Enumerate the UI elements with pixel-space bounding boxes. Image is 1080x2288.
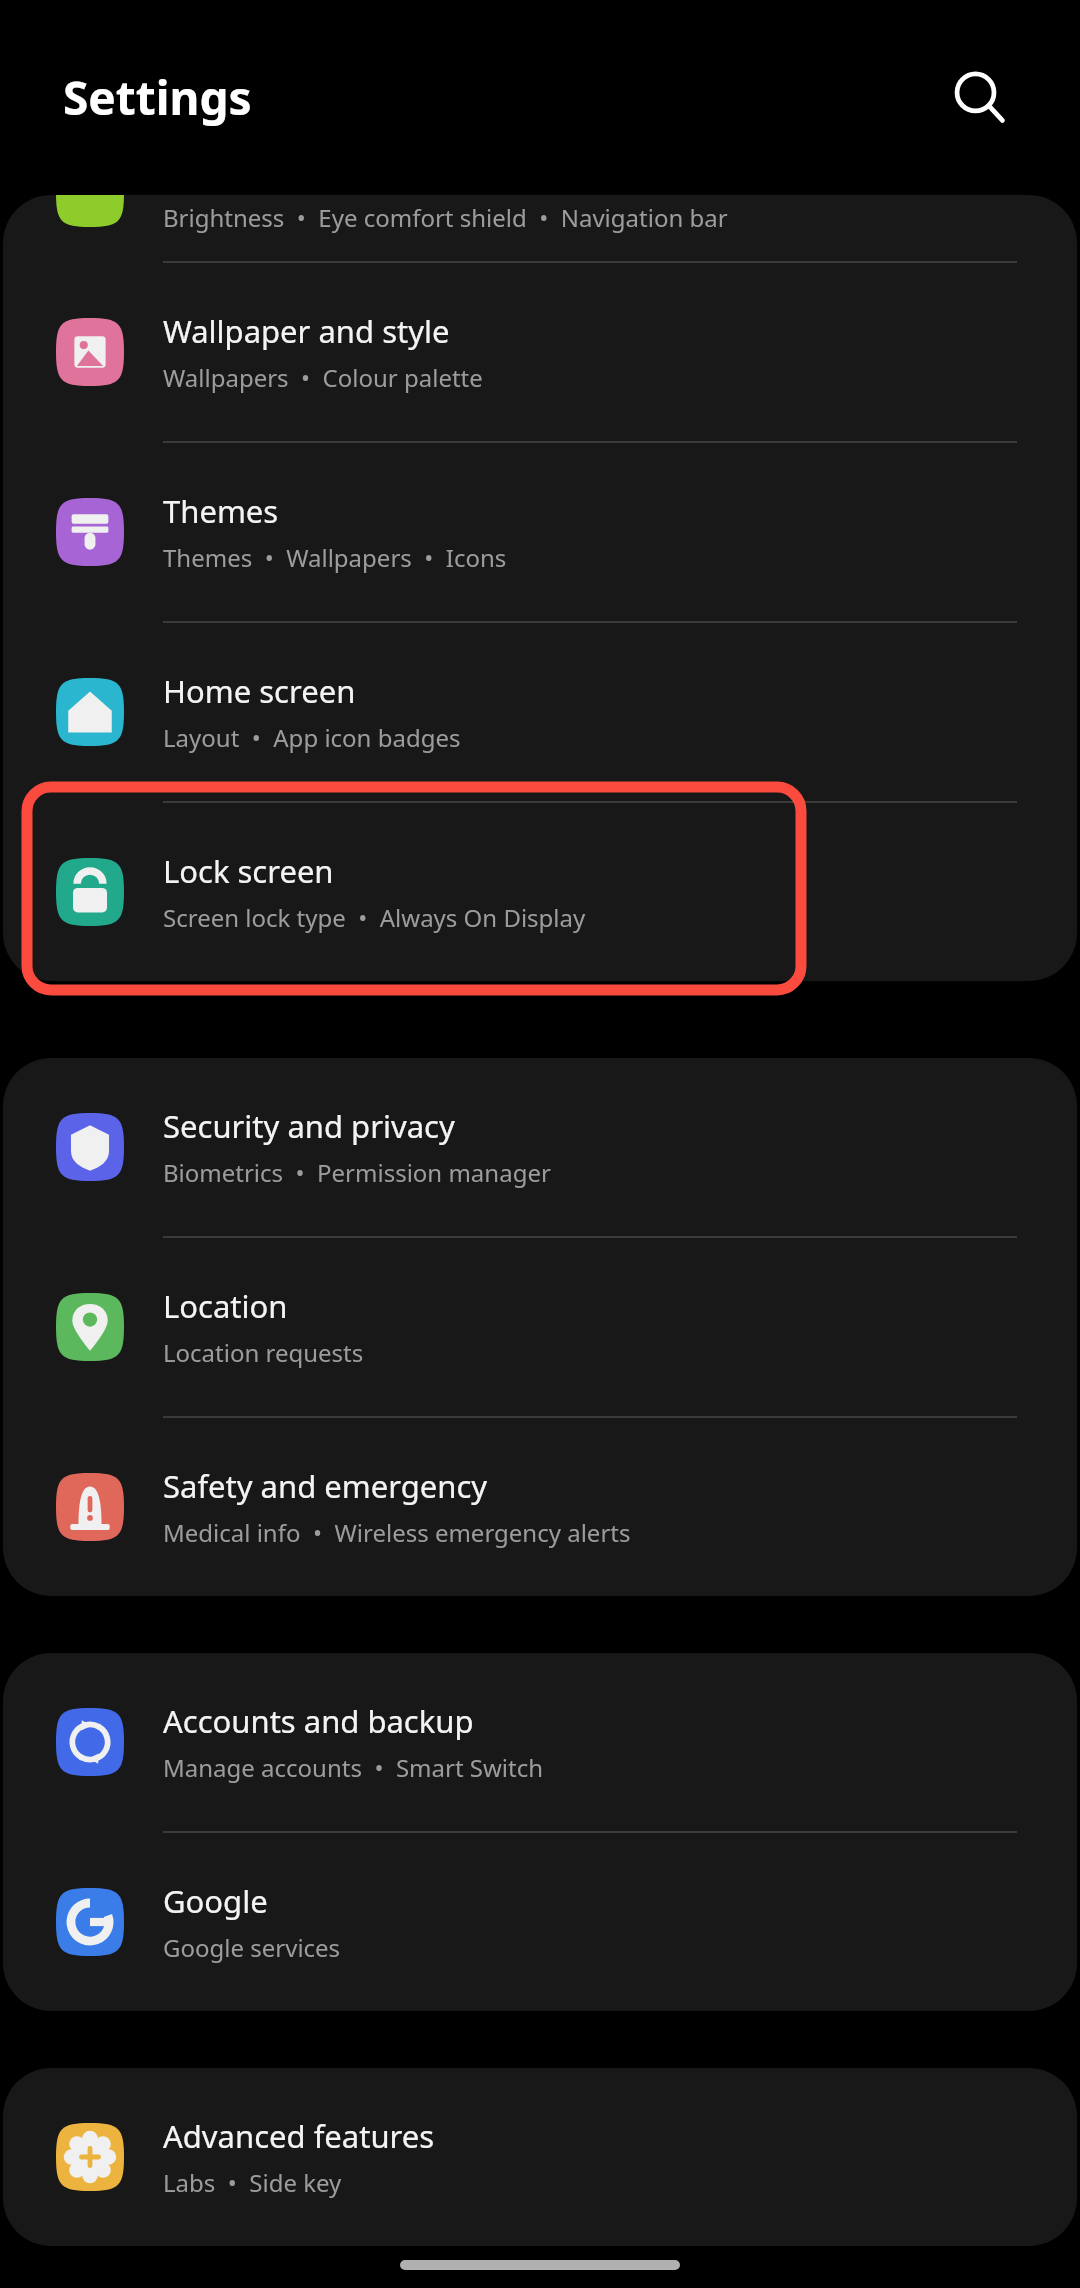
button[interactable]: Google — [3, 1831, 1077, 2011]
staticText: Biometrics • Permission manager — [163, 1156, 551, 1189]
button[interactable]: Search — [930, 48, 1030, 148]
staticText: Safety and emergency — [163, 1465, 488, 1507]
staticText: Brightness • Eye comfort shield • Naviga… — [163, 201, 728, 234]
staticText: Google services — [163, 1931, 341, 1964]
staticText: Layout • App icon badges — [163, 721, 461, 754]
staticText: Themes — [163, 490, 279, 532]
staticText: Wallpaper and style — [163, 310, 450, 352]
staticText: Location requests — [163, 1336, 364, 1369]
staticText: Location — [163, 1285, 288, 1327]
staticText: Medical info • Wireless emergency alerts — [163, 1516, 631, 1549]
staticText: Lock screen — [163, 850, 334, 892]
button[interactable]: Safety and emergency — [3, 1416, 1077, 1596]
button[interactable]: Home screen — [3, 621, 1077, 801]
button[interactable]: Themes — [3, 441, 1077, 621]
button[interactable]: Wallpaper and style — [3, 261, 1077, 441]
staticText: Settings — [63, 66, 252, 129]
button[interactable]: Lock screen — [3, 801, 1077, 981]
staticText: Themes • Wallpapers • Icons — [163, 541, 507, 574]
button[interactable]: Security and privacy — [3, 1058, 1077, 1236]
staticText: Wallpapers • Colour palette — [163, 361, 483, 394]
button[interactable]: Accounts and backup — [3, 1653, 1077, 1831]
staticText: Screen lock type • Always On Display — [163, 901, 586, 934]
staticText: Home screen — [163, 670, 356, 712]
staticText: Accounts and backup — [163, 1700, 474, 1742]
button[interactable]: Advanced features — [3, 2068, 1077, 2246]
button[interactable]: Location — [3, 1236, 1077, 1416]
staticText: Labs • Side key — [163, 2166, 342, 2199]
staticText: Advanced features — [163, 2115, 435, 2157]
staticText: Security and privacy — [163, 1105, 455, 1147]
staticText: Google — [163, 1880, 268, 1922]
staticText: Manage accounts • Smart Switch — [163, 1751, 544, 1784]
